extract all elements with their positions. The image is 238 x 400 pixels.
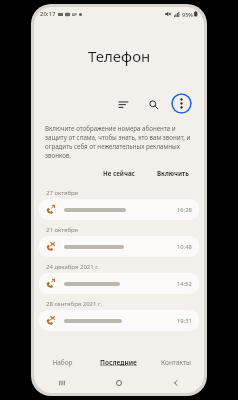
staticText: 27 октября xyxy=(46,189,79,197)
button[interactable]: Back xyxy=(147,373,204,393)
button[interactable]: 14:52 xyxy=(39,273,199,294)
staticText: 21 октября xyxy=(46,226,79,234)
staticText: 28 сентября 2021 г. xyxy=(46,300,103,308)
staticText: Телефон xyxy=(88,46,151,66)
staticText: 95% xyxy=(182,11,193,18)
button[interactable]: 19:31 xyxy=(39,310,199,331)
staticText: Включите отображение номера абонента и з… xyxy=(45,124,193,160)
staticText: Не сейчас xyxy=(103,169,135,177)
button[interactable]: Включить xyxy=(153,167,193,179)
staticText: Набор xyxy=(52,358,73,367)
staticText: 24 декабря 2021 г. xyxy=(46,263,100,271)
button[interactable]: Sort xyxy=(113,94,133,114)
button[interactable]: More options xyxy=(171,93,192,114)
staticText: Включить xyxy=(157,169,189,177)
button[interactable]: Search xyxy=(143,94,163,114)
staticText: 14:52 xyxy=(177,280,192,288)
staticText: 10:48 xyxy=(177,243,192,251)
button[interactable]: Recent apps xyxy=(34,373,90,393)
button[interactable]: Последние xyxy=(90,351,147,373)
staticText: 20:17 xyxy=(40,10,56,18)
button[interactable]: 10:48 xyxy=(39,236,199,257)
button[interactable]: 16:28 xyxy=(39,199,199,220)
button[interactable]: Контакты xyxy=(147,351,204,373)
staticText: Последние xyxy=(100,358,137,367)
button[interactable]: Home xyxy=(90,373,147,393)
staticText: 19:31 xyxy=(177,317,192,325)
button[interactable]: Не сейчас xyxy=(99,167,139,179)
staticText: 16:28 xyxy=(177,206,192,214)
button[interactable]: Набор xyxy=(34,351,90,373)
staticText: Контакты xyxy=(161,358,191,367)
